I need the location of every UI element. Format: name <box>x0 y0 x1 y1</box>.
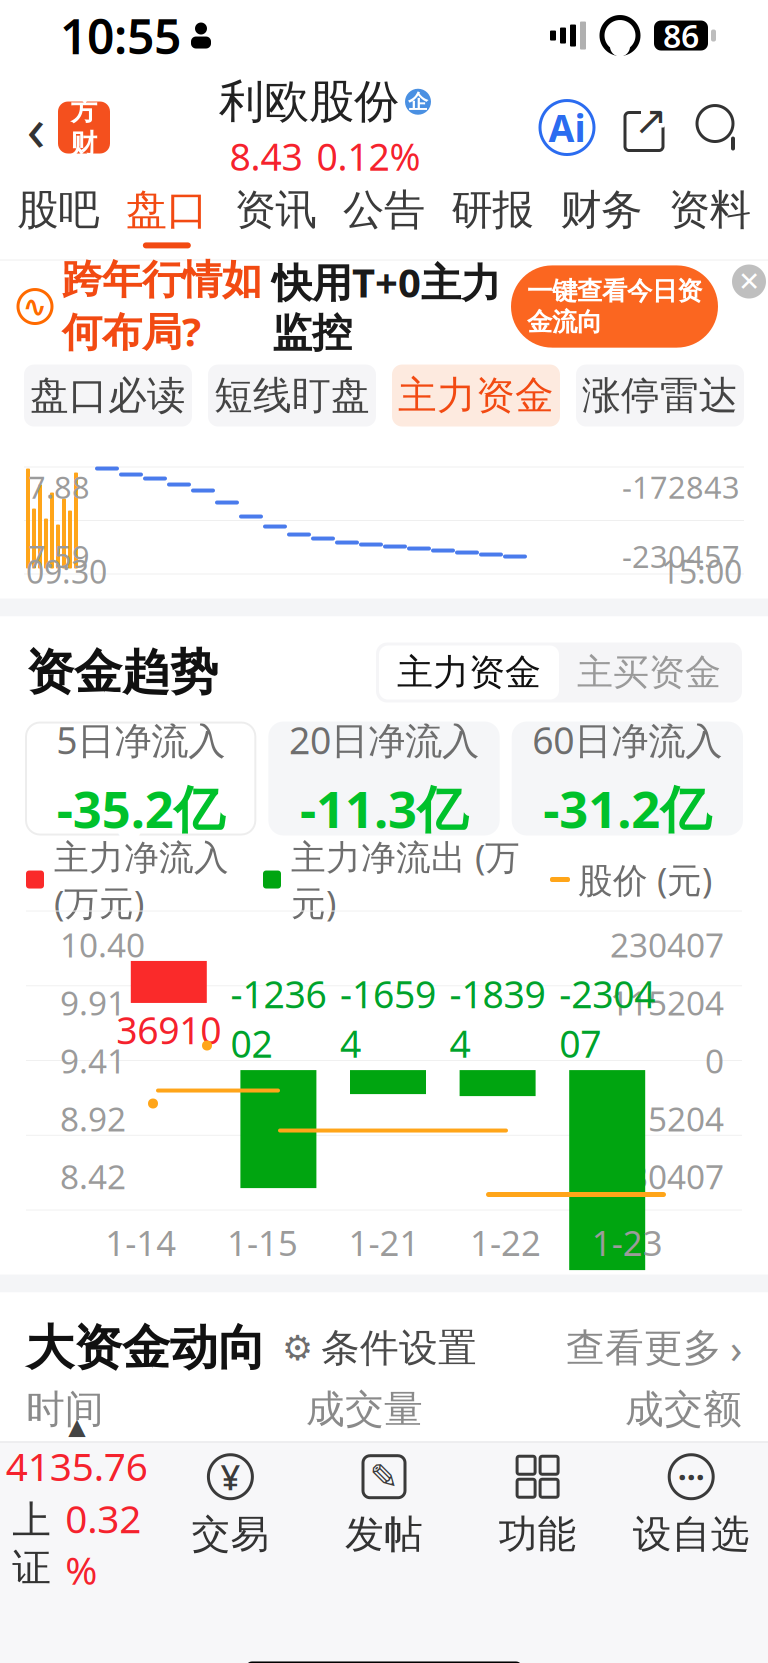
staticText: 86 <box>663 14 699 57</box>
staticText: 资金趋势 <box>26 643 218 702</box>
staticText: 230407 <box>610 922 724 967</box>
staticText: 资讯 <box>234 185 316 235</box>
staticText: 股价 (元) <box>578 856 712 902</box>
staticText: 20日净流入 <box>289 715 479 765</box>
staticText: 主力资金 <box>398 372 554 419</box>
staticText: 09:30 <box>26 550 107 592</box>
button[interactable]: 涨停雷达 <box>576 364 744 426</box>
staticText: 交易 <box>191 1511 269 1558</box>
staticText: 0.12% <box>316 132 420 181</box>
staticText: 主力净流出 (万元) <box>291 833 520 926</box>
staticText: 查看更多 <box>566 1324 722 1372</box>
staticText: 0 <box>705 1038 724 1083</box>
button[interactable]: AI assistant <box>540 100 594 154</box>
button[interactable]: East Money <box>58 101 110 153</box>
staticText: 36910 <box>116 1005 221 1054</box>
staticText: 涨停雷达 <box>582 372 738 419</box>
staticText: 8.92 <box>60 1096 126 1141</box>
button[interactable]: 查看更多 <box>566 1320 742 1376</box>
staticText: 发帖 <box>345 1511 423 1558</box>
button[interactable]: 功能 <box>461 1442 614 1566</box>
staticText: 一键查看今日资金流向 <box>527 275 702 338</box>
staticText: ‹ <box>26 87 45 168</box>
staticText: 盘口必读 <box>30 372 186 419</box>
staticText: 0.32% <box>65 1493 141 1595</box>
staticText: 公告 <box>343 185 425 235</box>
button[interactable]: 研报 <box>438 173 547 259</box>
button[interactable]: 资讯 <box>221 173 330 259</box>
button[interactable]: 盘口 <box>113 173 221 259</box>
staticText: 企 <box>408 89 428 114</box>
staticText: 股吧 <box>17 185 99 235</box>
staticText: 10:55 <box>60 4 181 67</box>
staticText: 快用T+0主力监控 <box>272 255 501 358</box>
button[interactable]: Search <box>694 100 744 154</box>
staticText: 大资金动向 <box>26 1318 266 1377</box>
staticText: 条件设置 <box>321 1324 477 1372</box>
staticText: ∿ <box>22 290 47 323</box>
button[interactable]: 5日净流入 <box>26 722 255 834</box>
button[interactable]: 盘口必读 <box>24 364 192 426</box>
staticText: 主买资金 <box>577 650 721 695</box>
staticText: -16594 <box>340 969 436 1068</box>
staticText: ⚙ <box>282 1328 313 1368</box>
button[interactable]: ∿ <box>0 264 768 348</box>
staticText: 盘口 <box>126 185 208 235</box>
staticText: -230407 <box>559 969 655 1068</box>
staticText: › <box>730 1321 742 1374</box>
staticText: 东方 <box>70 62 97 127</box>
staticText: ¥ <box>220 1454 240 1500</box>
staticText: -18394 <box>450 969 546 1068</box>
staticText: 9.41 <box>60 1038 126 1083</box>
button[interactable]: 短线盯盘 <box>208 364 376 426</box>
staticText: 60日净流入 <box>532 715 722 765</box>
button[interactable]: 股吧 <box>4 173 113 259</box>
staticText: -115204 <box>599 1096 724 1141</box>
staticText: 1-21 <box>348 1219 419 1265</box>
staticText: 1-23 <box>592 1219 663 1265</box>
staticText: -35.2亿 <box>57 775 225 842</box>
staticText: 资料 <box>669 185 751 235</box>
button[interactable]: 主力资金 <box>392 364 560 426</box>
button[interactable]: 公告 <box>330 173 438 259</box>
staticText: 研报 <box>452 185 534 235</box>
staticText: 主力净流入 (万元) <box>54 833 229 926</box>
button[interactable]: 主买资金 <box>559 645 739 699</box>
button[interactable]: ··· <box>614 1442 768 1566</box>
staticText: 4135.76 <box>6 1440 148 1492</box>
button[interactable]: Share <box>620 100 668 154</box>
button[interactable]: ¥ <box>154 1442 307 1566</box>
staticText: 成交额 <box>625 1386 742 1433</box>
button[interactable]: 财务 <box>547 173 655 259</box>
button[interactable]: 资料 <box>655 173 764 259</box>
staticText: 15:00 <box>661 550 742 592</box>
button[interactable]: Close banner <box>732 264 766 298</box>
button[interactable]: 20日净流入 <box>269 722 499 834</box>
staticText: 主力资金 <box>397 650 541 695</box>
button[interactable]: ⚙ <box>266 1320 477 1376</box>
button[interactable]: Back <box>14 97 58 157</box>
staticText: 上证 <box>12 1496 51 1591</box>
staticText: 1-22 <box>470 1219 541 1265</box>
staticText: 设自选 <box>633 1511 750 1558</box>
button[interactable]: ✎ <box>307 1442 461 1566</box>
staticText: ▼ <box>118 825 141 858</box>
staticText: 成交量 <box>306 1386 423 1433</box>
staticText: 财富 <box>70 127 97 193</box>
staticText: -172843 <box>622 466 740 507</box>
staticText: 时间 <box>26 1386 104 1433</box>
button[interactable]: ▲ <box>0 1442 154 1566</box>
staticText: 财务 <box>560 185 642 235</box>
staticText: ▲ <box>68 1414 85 1439</box>
staticText: 7.59 <box>28 536 90 576</box>
staticText: 10.40 <box>60 922 145 967</box>
button[interactable]: 主力资金 <box>379 645 559 699</box>
staticText: -230457 <box>622 536 740 576</box>
staticText: -230407 <box>599 1154 724 1199</box>
staticText: 功能 <box>499 1511 577 1558</box>
button[interactable]: 60日净流入 <box>513 722 742 834</box>
staticText: 1-14 <box>105 1219 176 1265</box>
staticText: ↗ <box>634 98 668 143</box>
staticText: 跨年行情如何布局? <box>62 255 262 358</box>
staticText: -123602 <box>230 969 326 1068</box>
